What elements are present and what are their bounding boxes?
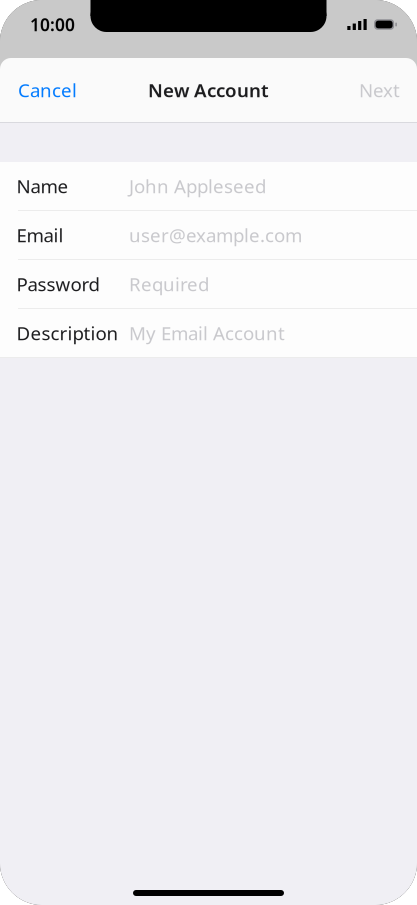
staticText: My Email Account bbox=[129, 321, 285, 345]
staticText: Cancel bbox=[18, 78, 77, 102]
staticText: Email bbox=[16, 223, 63, 247]
staticText: New Account bbox=[148, 78, 269, 102]
staticText: Next bbox=[359, 78, 400, 102]
button[interactable]: Cancel bbox=[0, 58, 91, 122]
staticText: John Appleseed bbox=[129, 174, 266, 198]
staticText: user@example.com bbox=[129, 223, 302, 247]
staticText: Password bbox=[16, 272, 99, 296]
button[interactable]: Name bbox=[0, 162, 417, 210]
button[interactable]: Next bbox=[345, 58, 417, 122]
staticText: Required bbox=[129, 272, 209, 296]
staticText: Name bbox=[16, 174, 68, 198]
staticText: 10:00 bbox=[30, 13, 75, 36]
button[interactable]: Email bbox=[0, 211, 417, 259]
button[interactable]: Password bbox=[0, 260, 417, 308]
staticText: Description bbox=[16, 321, 118, 345]
button[interactable]: Description bbox=[0, 309, 417, 357]
